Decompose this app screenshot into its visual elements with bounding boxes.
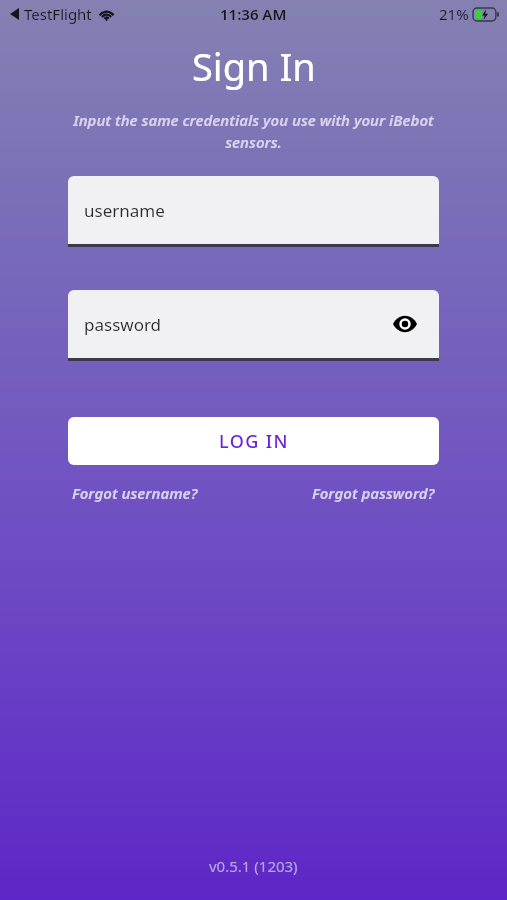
staticText: Input the same credentials you use with … [58,110,449,153]
staticText: 21% [439,4,469,24]
staticText: username [84,199,165,222]
staticText: 11:36 AM [220,4,287,24]
staticText: v0.5.1 (1203) [209,856,298,876]
staticText: password [84,313,162,336]
button[interactable]: username [68,176,439,247]
staticText: Forgot password? [312,483,435,503]
staticText: LOG IN [219,429,289,454]
staticText: Sign In [192,40,316,92]
button[interactable]: Forgot username? [68,479,202,507]
button[interactable]: LOG IN [68,417,439,465]
button[interactable]: Forgot password? [308,479,439,507]
button[interactable]: Show password [387,306,423,342]
staticText: Forgot username? [72,483,198,503]
staticText: TestFlight [24,4,92,24]
button[interactable]: password [68,290,439,361]
